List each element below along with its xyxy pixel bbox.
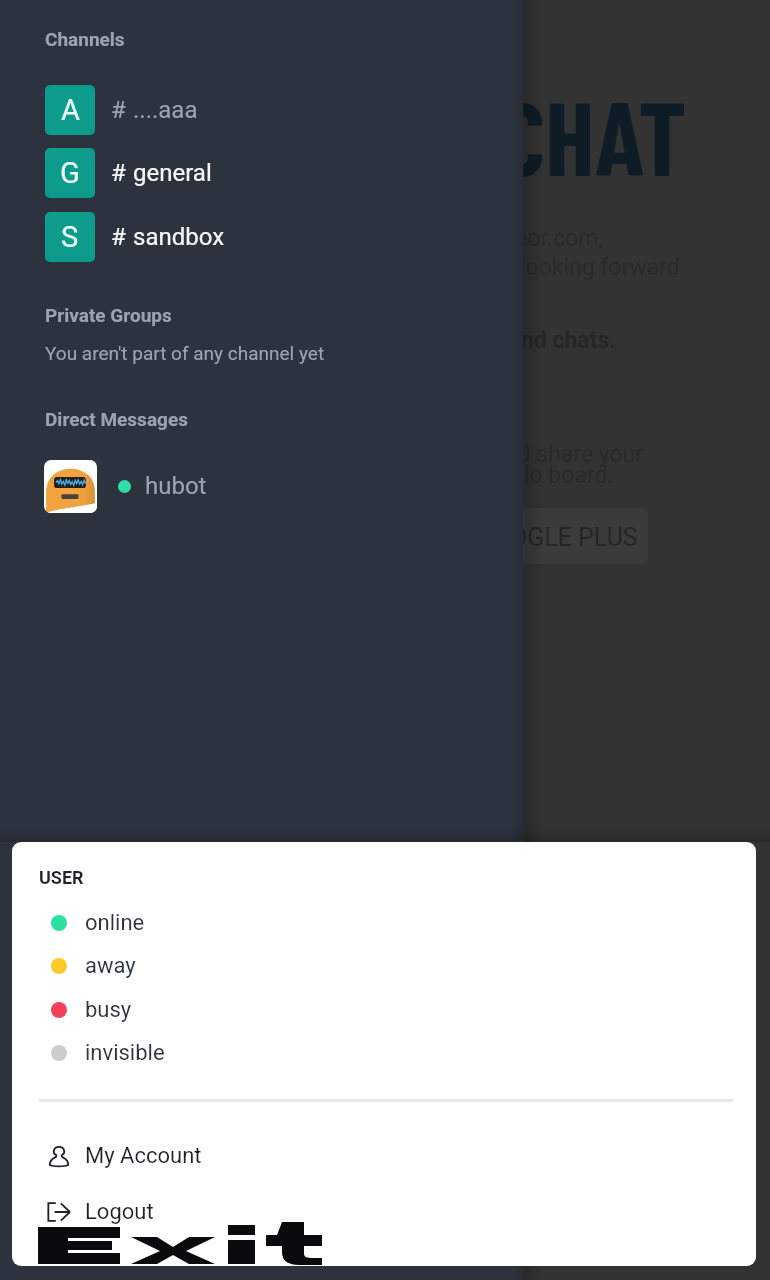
staticText: # — [111, 223, 126, 251]
staticText: hubot — [145, 472, 207, 500]
staticText: general — [133, 159, 212, 187]
staticText: away — [85, 953, 136, 979]
button[interactable]: Logout — [12, 1188, 756, 1236]
staticText: we will answer you and we're looking for… — [220, 254, 680, 281]
staticText: thoughts on our hello board. — [326, 462, 614, 489]
staticText: S — [61, 220, 79, 254]
button[interactable]: away — [12, 945, 756, 987]
button[interactable]: My Account — [12, 1132, 756, 1180]
staticText: # — [111, 96, 126, 124]
button[interactable]: hubot — [0, 454, 523, 518]
staticText: Logout — [85, 1199, 154, 1225]
button[interactable]: A — [0, 78, 523, 142]
staticText: Start your own channels and chats. — [253, 327, 616, 354]
staticText: Direct Messages — [45, 408, 188, 430]
button[interactable]: online — [12, 902, 756, 944]
button[interactable]: G — [0, 141, 523, 205]
staticText: Private Groups — [45, 304, 172, 326]
staticText: # — [111, 159, 126, 187]
staticText: USER — [39, 867, 84, 888]
staticText: Create your room and share your — [310, 441, 644, 468]
staticText: Please contact us at support@weareor.com… — [152, 225, 603, 252]
staticText: busy — [85, 997, 132, 1023]
staticText: sandbox — [133, 223, 225, 251]
button[interactable]: invisible — [12, 1032, 756, 1074]
button[interactable]: S — [0, 205, 523, 269]
staticText: ....aaa — [133, 96, 198, 124]
staticText: My Account — [85, 1143, 202, 1169]
staticText: ROCKET.CHAT — [190, 73, 687, 197]
button[interactable]: LOGIN GOOGLE PLUS — [360, 508, 648, 564]
staticText: A — [61, 93, 80, 127]
staticText: online — [85, 910, 145, 936]
staticText: G — [60, 156, 80, 190]
staticText: You aren't part of any channel yet — [45, 342, 325, 364]
staticText: invisible — [85, 1040, 165, 1066]
staticText: Channels — [45, 28, 125, 50]
button[interactable]: busy — [12, 989, 756, 1031]
staticText: LOGIN GOOGLE PLUS — [398, 523, 638, 552]
